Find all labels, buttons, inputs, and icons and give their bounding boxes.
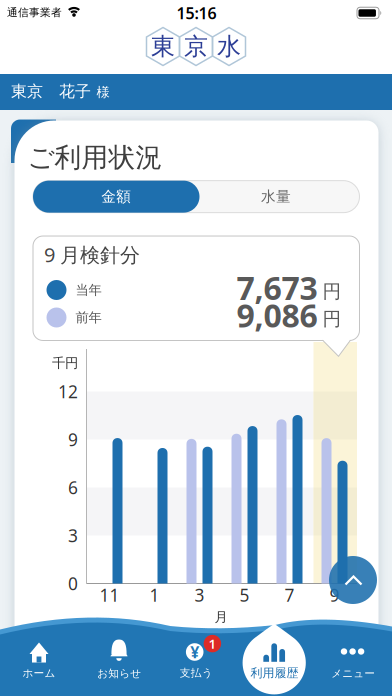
staticText: 月	[214, 609, 227, 625]
staticText: 11	[99, 583, 119, 606]
staticText: 9	[68, 428, 78, 451]
staticText: 千円	[52, 355, 78, 371]
staticText: 円	[322, 280, 341, 303]
staticText: 9	[329, 583, 339, 606]
staticText: 様	[96, 84, 109, 100]
button[interactable]: ホーム	[0, 628, 78, 690]
staticText: 9,086	[236, 294, 317, 336]
staticText: 12	[58, 380, 78, 403]
staticText: 7	[284, 583, 294, 606]
staticText: 前年	[75, 309, 101, 326]
staticText: ¥	[190, 641, 199, 663]
staticText: ホーム	[22, 667, 55, 680]
button[interactable]: 金額	[33, 181, 199, 213]
staticText: 水量	[261, 188, 291, 206]
button[interactable]: 利用履歴	[235, 628, 313, 690]
staticText: 9 月検針分	[44, 241, 140, 268]
staticText: 7,673	[236, 266, 317, 309]
staticText: 3	[194, 583, 204, 606]
button[interactable]: ¥	[158, 628, 236, 690]
staticText: 0	[68, 572, 78, 595]
button[interactable]: お知らせ	[79, 628, 157, 690]
staticText: 金額	[101, 188, 131, 206]
staticText: 3	[68, 524, 78, 547]
staticText: 通信事業者	[7, 6, 62, 19]
staticText: 東京 花子	[11, 82, 91, 101]
staticText: 5	[239, 583, 249, 606]
staticText: メニュー	[331, 667, 375, 680]
staticText: 東	[151, 32, 175, 61]
staticText: 京	[184, 32, 208, 61]
staticText: 1	[208, 635, 216, 652]
staticText: 支払う	[180, 666, 213, 679]
staticText: 利用履歴	[250, 666, 298, 680]
staticText: ご利用状況	[27, 141, 162, 174]
staticText: 当年	[75, 282, 101, 298]
staticText: 水	[217, 32, 241, 61]
staticText: 1	[149, 583, 159, 606]
staticText: お知らせ	[97, 667, 141, 680]
staticText: 6	[68, 476, 78, 499]
button[interactable]	[329, 556, 377, 604]
staticText: 15:16	[176, 2, 216, 24]
button[interactable]: メニュー	[314, 628, 392, 690]
button[interactable]: 水量	[196, 181, 356, 213]
staticText: 円	[322, 307, 341, 330]
